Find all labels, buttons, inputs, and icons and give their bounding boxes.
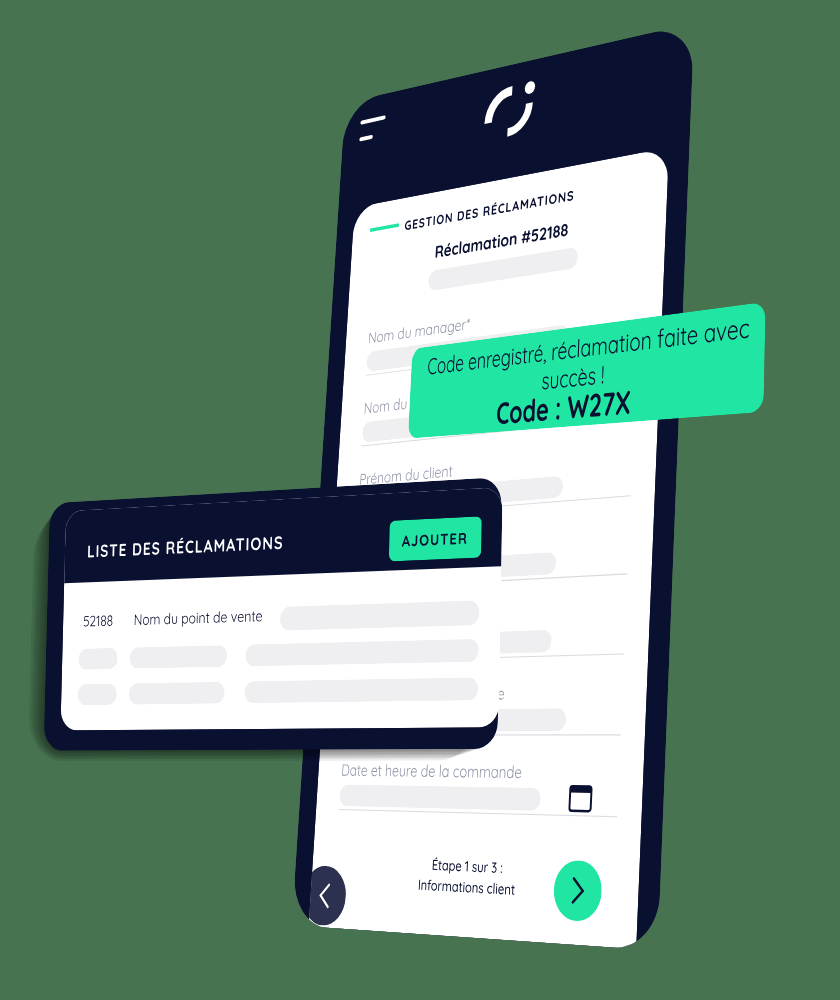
staticText: GESTION DES RÉCLAMATIONS xyxy=(404,186,576,234)
staticText: LISTE DES RÉCLAMATIONS xyxy=(87,531,284,562)
button[interactable]: Next xyxy=(552,859,603,922)
staticText: Code enregistré, réclamation faite avec … xyxy=(421,309,757,407)
staticText: Nom du manager* xyxy=(368,314,471,347)
staticText: Réclamation #52188 xyxy=(350,201,667,277)
staticText: AJOUTER xyxy=(402,528,469,551)
staticText: Étape 1 sur 3 : Informations client xyxy=(311,850,640,906)
staticText: Nom du magasin* xyxy=(363,387,464,418)
button[interactable]: Menu xyxy=(354,104,399,155)
staticText: Prénom du client xyxy=(359,461,453,489)
staticText: Référence de la commande xyxy=(345,683,506,705)
staticText: Code : W27X xyxy=(408,369,747,439)
staticText: Nom du client xyxy=(354,535,433,559)
button[interactable]: AJOUTER xyxy=(389,516,482,561)
staticText: Date et heure de la commande xyxy=(341,760,523,782)
staticText: Numéro de la commande xyxy=(350,606,497,632)
button[interactable]: Back xyxy=(309,865,348,927)
staticText: Nom du point de vente xyxy=(134,605,263,628)
staticText: 52188 xyxy=(83,610,113,630)
